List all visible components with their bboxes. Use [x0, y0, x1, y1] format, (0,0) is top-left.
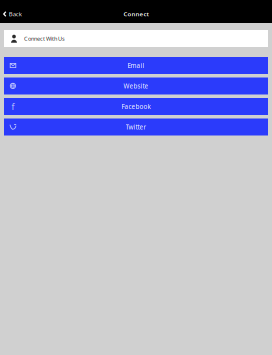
staticText: Connect With Us [24, 35, 65, 42]
staticText: Email [127, 61, 144, 70]
staticText: Facebook [121, 102, 150, 111]
staticText: Back [9, 10, 22, 18]
staticText: Website [123, 82, 148, 90]
staticText: f [11, 100, 14, 112]
button[interactable]: Website [4, 77, 268, 94]
staticText: Connect [123, 10, 148, 18]
button[interactable]: Email [4, 57, 268, 74]
button[interactable]: Back [0, 5, 26, 23]
button[interactable]: f [4, 98, 268, 115]
staticText: Twitter [125, 123, 146, 131]
button[interactable]: Twitter [4, 118, 268, 135]
